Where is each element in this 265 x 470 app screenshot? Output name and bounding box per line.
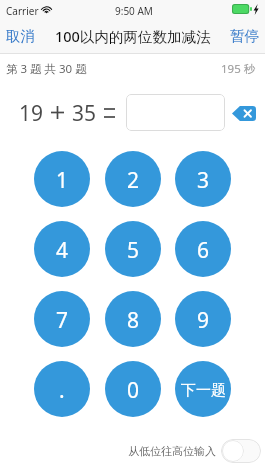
staticText: 2 bbox=[127, 166, 140, 195]
staticText: 暂停 bbox=[230, 27, 259, 45]
button[interactable]: 2 bbox=[105, 151, 161, 207]
staticText: Carrier bbox=[6, 4, 39, 18]
staticText: 100以内的两位数加减法 bbox=[55, 26, 211, 46]
button[interactable]: 6 bbox=[175, 221, 231, 277]
staticText: 5 bbox=[127, 236, 140, 265]
staticText: 7 bbox=[56, 306, 69, 335]
button[interactable]: Backspace bbox=[232, 106, 256, 121]
button[interactable]: 0 bbox=[105, 361, 161, 417]
staticText: 从低位往高位输入 bbox=[128, 444, 216, 458]
button[interactable]: 5 bbox=[105, 221, 161, 277]
staticText: 35 bbox=[72, 99, 97, 128]
staticText: 第 3 题 共 30 题 bbox=[6, 61, 87, 77]
staticText: 3 bbox=[197, 166, 210, 195]
button[interactable]: 暂停 bbox=[224, 21, 265, 51]
staticText: 9:50 AM bbox=[115, 4, 153, 18]
button[interactable]: 取消 bbox=[0, 21, 41, 51]
staticText: 下一题 bbox=[181, 381, 226, 400]
button[interactable]: 8 bbox=[105, 291, 161, 347]
staticText: 取消 bbox=[6, 27, 35, 45]
staticText: 9 bbox=[197, 306, 210, 335]
staticText: . bbox=[59, 376, 65, 405]
button[interactable]: . bbox=[34, 361, 90, 417]
staticText: 1 bbox=[56, 166, 69, 195]
staticText: 6 bbox=[197, 236, 210, 265]
button[interactable]: 9 bbox=[175, 291, 231, 347]
staticText: 195 秒 bbox=[221, 61, 256, 77]
button[interactable]: 下一题 bbox=[175, 361, 231, 417]
staticText: 4 bbox=[56, 236, 69, 265]
button[interactable]: 7 bbox=[34, 291, 90, 347]
staticText: 8 bbox=[127, 306, 140, 335]
button[interactable]: 3 bbox=[175, 151, 231, 207]
button[interactable]: 1 bbox=[34, 151, 90, 207]
button[interactable]: 4 bbox=[34, 221, 90, 277]
button[interactable]: Input from low to high digit bbox=[221, 439, 261, 463]
staticText: 0 bbox=[127, 376, 140, 405]
button[interactable] bbox=[126, 94, 225, 131]
staticText: 19 bbox=[19, 99, 44, 128]
